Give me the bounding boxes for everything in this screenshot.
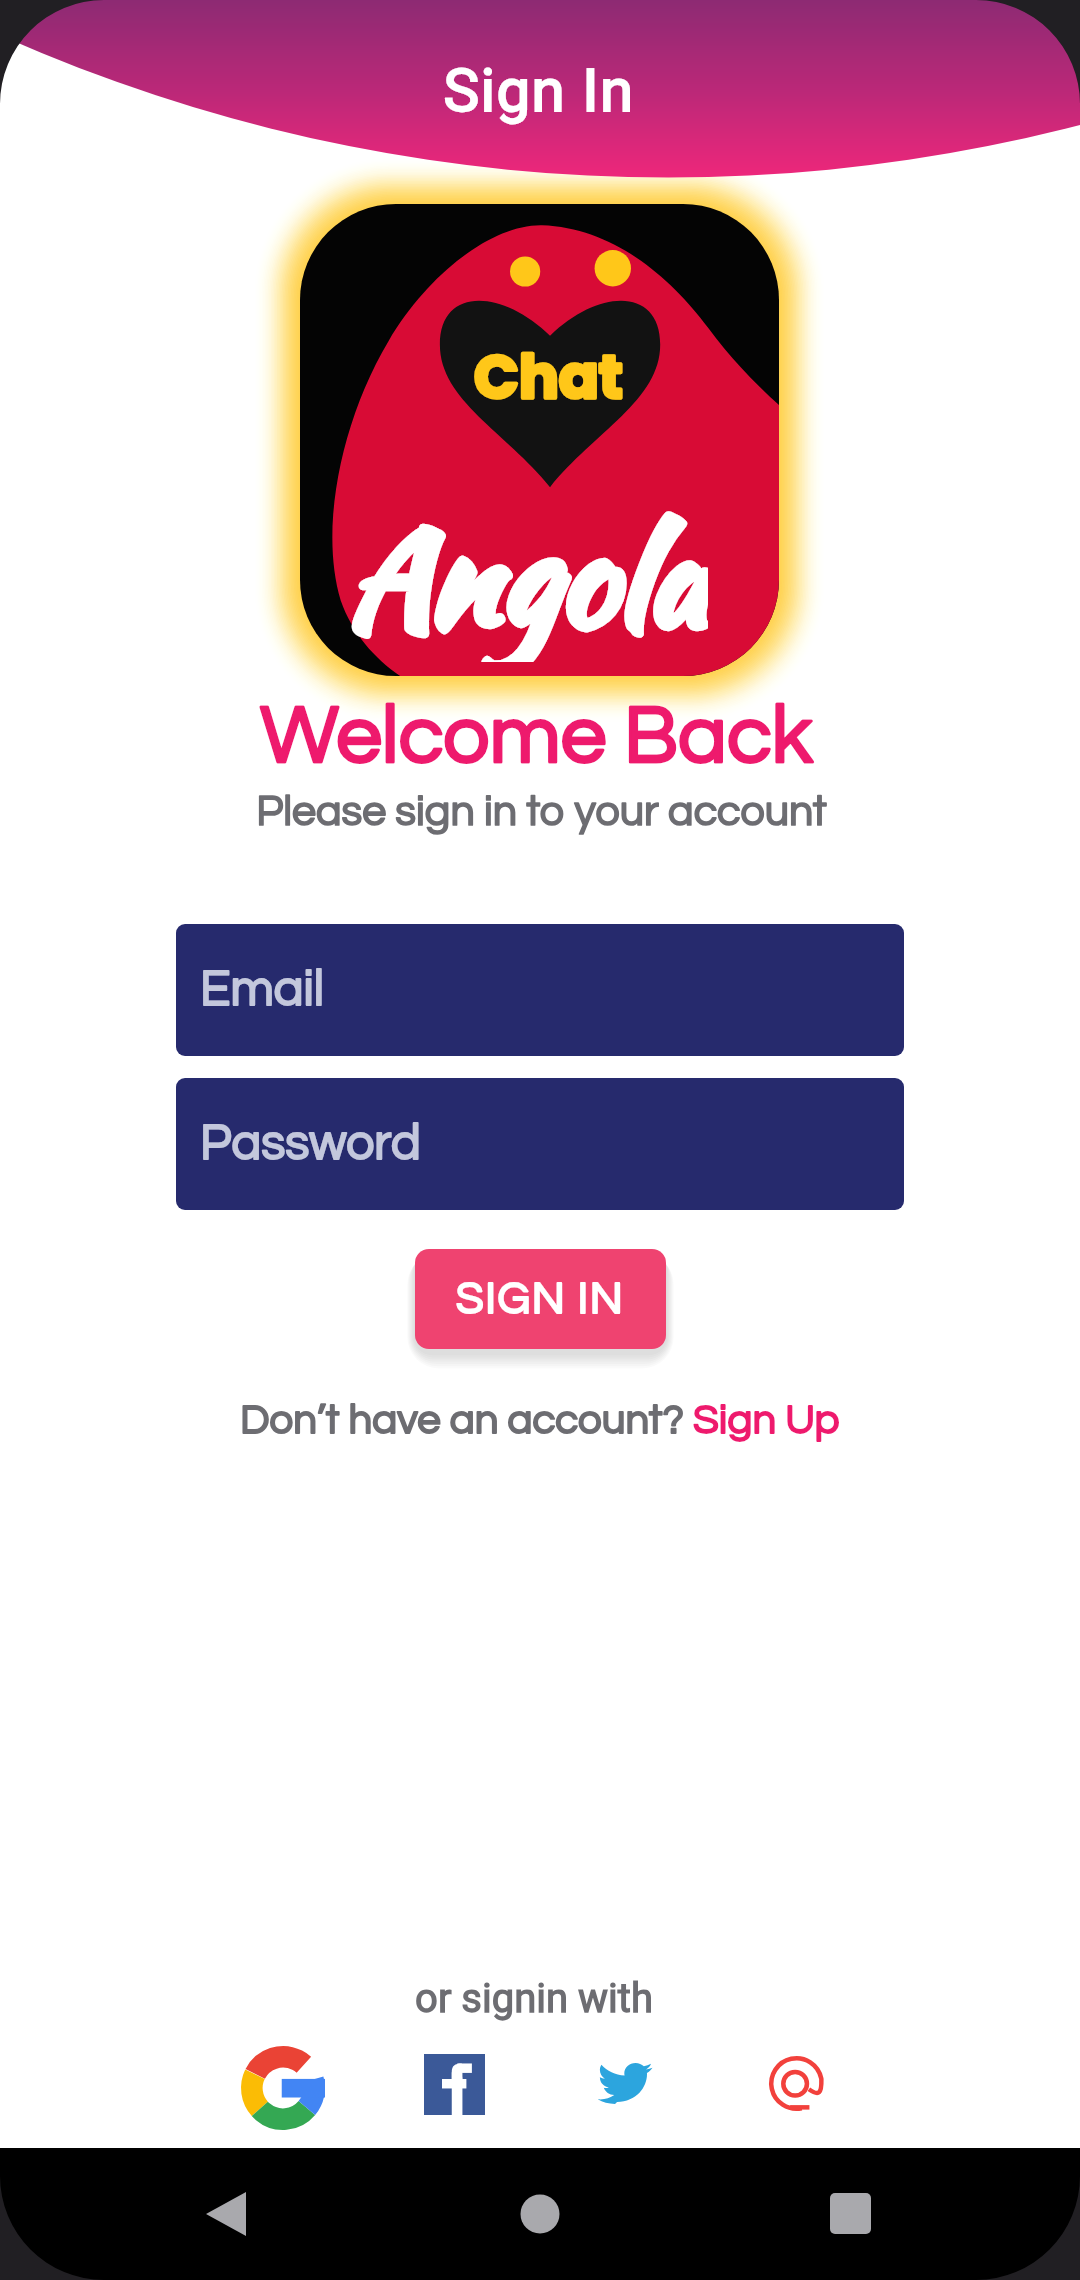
staticText: Please sign in to your account <box>256 790 827 834</box>
staticText: Angola <box>348 482 708 662</box>
staticText: Password <box>200 1118 421 1170</box>
staticText: Chat <box>474 336 623 419</box>
staticText: or signin with <box>415 1975 653 2022</box>
button[interactable]: Password <box>176 1078 904 1210</box>
staticText: Email <box>200 964 325 1016</box>
button[interactable]: Sign Up <box>693 1399 840 1442</box>
staticText: Don’t have an account? <box>240 1399 693 1442</box>
staticText: Sign Up <box>693 1399 840 1442</box>
staticText: Chat <box>474 336 623 419</box>
staticText: Sign Up <box>693 1399 840 1442</box>
button[interactable]: SIGN IN <box>415 1249 666 1349</box>
staticText: Welcome Back <box>260 695 813 779</box>
staticText: Email <box>200 964 325 1016</box>
staticText: Angola <box>348 482 708 662</box>
staticText: Don’t have an account? <box>240 1399 693 1442</box>
staticText: Sign In <box>443 55 635 125</box>
staticText: Password <box>200 1118 421 1170</box>
staticText: Welcome Back <box>260 695 813 779</box>
staticText: SIGN IN <box>456 1276 625 1322</box>
button[interactable]: Sign in with email <box>769 2056 824 2111</box>
staticText: Please sign in to your account <box>256 790 827 834</box>
button[interactable]: Sign in with Facebook <box>424 2054 485 2115</box>
button[interactable]: Back <box>166 2174 286 2254</box>
button[interactable]: Sign in with Google <box>241 2046 325 2130</box>
button[interactable]: Email <box>176 924 904 1056</box>
button[interactable]: Sign in with Twitter <box>601 2055 652 2102</box>
staticText: SIGN IN <box>456 1276 625 1322</box>
button[interactable]: Home <box>480 2174 600 2254</box>
button[interactable]: Recent apps <box>790 2174 910 2254</box>
